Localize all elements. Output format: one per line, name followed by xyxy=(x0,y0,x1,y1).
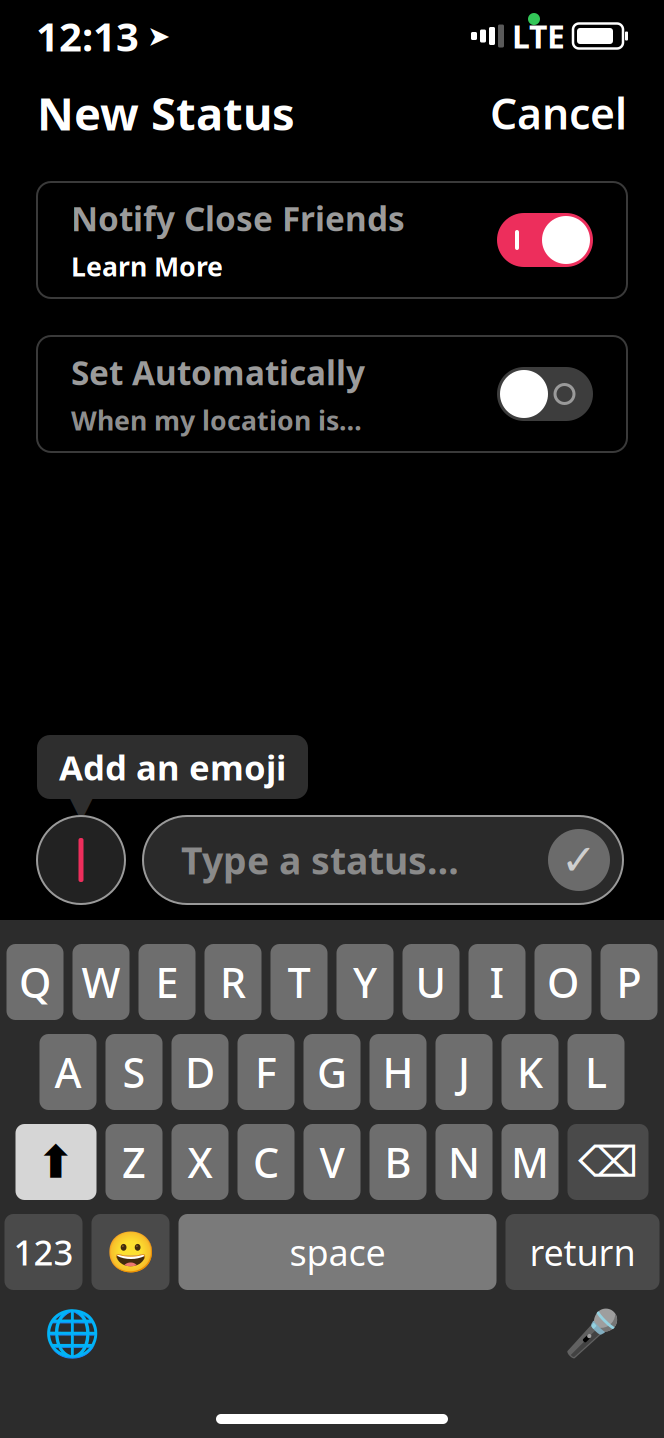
staticText: K xyxy=(517,1045,543,1099)
staticText: 🌐 xyxy=(44,1308,100,1360)
button[interactable]: K xyxy=(501,1034,558,1110)
button[interactable]: Type a status… xyxy=(143,816,623,904)
staticText: L xyxy=(585,1045,607,1099)
staticText: space xyxy=(289,1228,385,1276)
staticText: J xyxy=(458,1045,470,1099)
staticText: U xyxy=(415,955,446,1009)
button[interactable]: W xyxy=(72,944,129,1020)
button[interactable]: C xyxy=(237,1124,294,1200)
staticText: M xyxy=(511,1135,549,1189)
button[interactable]: V xyxy=(303,1124,360,1200)
staticText: ⌫ xyxy=(578,1138,638,1186)
button[interactable]: 123 xyxy=(4,1214,82,1290)
button[interactable]: I xyxy=(468,944,525,1020)
button[interactable]: U xyxy=(402,944,459,1020)
button[interactable]: G xyxy=(303,1034,360,1110)
staticText: S xyxy=(122,1045,145,1099)
staticText: LTE xyxy=(512,15,565,57)
button[interactable]: Set Automatically xyxy=(37,336,627,452)
staticText: D xyxy=(185,1045,215,1099)
button[interactable]: return xyxy=(505,1214,659,1290)
staticText: 123 xyxy=(13,1229,73,1275)
button[interactable]: Change keyboard xyxy=(42,1304,102,1364)
button[interactable]: J xyxy=(435,1034,492,1110)
staticText: I xyxy=(489,955,504,1009)
button[interactable]: Shift xyxy=(15,1124,96,1200)
staticText: Learn More xyxy=(71,248,223,284)
staticText: Notify Close Friends xyxy=(71,196,405,240)
staticText: Y xyxy=(353,955,377,1009)
staticText: E xyxy=(155,955,178,1009)
staticText: G xyxy=(317,1045,347,1099)
staticText: 😀 xyxy=(105,1229,155,1275)
staticText: When my location is… xyxy=(71,402,362,438)
staticText: 🎤 xyxy=(564,1308,620,1360)
staticText: New Status xyxy=(37,83,295,143)
staticText: W xyxy=(81,955,120,1009)
button[interactable]: P xyxy=(600,944,657,1020)
staticText: return xyxy=(529,1228,635,1276)
staticText: ✓ xyxy=(561,836,597,884)
button[interactable]: T xyxy=(270,944,327,1020)
staticText: Add an emoji xyxy=(59,744,286,790)
button[interactable]: M xyxy=(501,1124,558,1200)
staticText: Q xyxy=(19,955,51,1009)
button[interactable]: Y xyxy=(336,944,393,1020)
staticText: O xyxy=(547,955,579,1009)
staticText: ⬆ xyxy=(37,1136,75,1188)
button[interactable]: A xyxy=(39,1034,96,1110)
button[interactable]: O xyxy=(534,944,591,1020)
button[interactable]: N xyxy=(435,1124,492,1200)
button[interactable]: X xyxy=(171,1124,228,1200)
button[interactable]: B xyxy=(369,1124,426,1200)
button[interactable]: Notify Close Friends xyxy=(37,182,627,298)
button[interactable]: Dictation xyxy=(562,1304,622,1364)
staticText: B xyxy=(384,1135,411,1189)
button[interactable]: F xyxy=(237,1034,294,1110)
staticText: Type a status… xyxy=(181,835,459,885)
button[interactable]: H xyxy=(369,1034,426,1110)
staticText: P xyxy=(616,955,641,1009)
staticText: ▼ xyxy=(70,791,93,824)
staticText: Set Automatically xyxy=(71,350,365,394)
button[interactable]: Delete xyxy=(567,1124,648,1200)
staticText: V xyxy=(319,1135,344,1189)
button[interactable]: E xyxy=(138,944,195,1020)
staticText: 12:13 xyxy=(36,9,139,62)
staticText: A xyxy=(54,1045,81,1099)
button[interactable]: D xyxy=(171,1034,228,1110)
button[interactable]: Add an emoji xyxy=(37,816,125,904)
button[interactable]: L xyxy=(567,1034,624,1110)
staticText: N xyxy=(448,1135,480,1189)
button[interactable]: R xyxy=(204,944,261,1020)
button[interactable]: Cancel xyxy=(490,85,627,141)
staticText: T xyxy=(287,955,310,1009)
button[interactable]: Z xyxy=(105,1124,162,1200)
staticText: X xyxy=(187,1135,212,1189)
button[interactable]: Q xyxy=(6,944,63,1020)
button[interactable]: S xyxy=(105,1034,162,1110)
staticText: Cancel xyxy=(490,85,627,141)
staticText: R xyxy=(220,955,246,1009)
button[interactable]: space xyxy=(178,1214,496,1290)
button[interactable]: Emoji keyboard xyxy=(91,1214,169,1290)
staticText: ➤ xyxy=(147,20,170,52)
staticText: H xyxy=(382,1045,413,1099)
staticText: C xyxy=(253,1135,279,1189)
staticText: F xyxy=(255,1045,277,1099)
staticText: Z xyxy=(122,1135,146,1189)
